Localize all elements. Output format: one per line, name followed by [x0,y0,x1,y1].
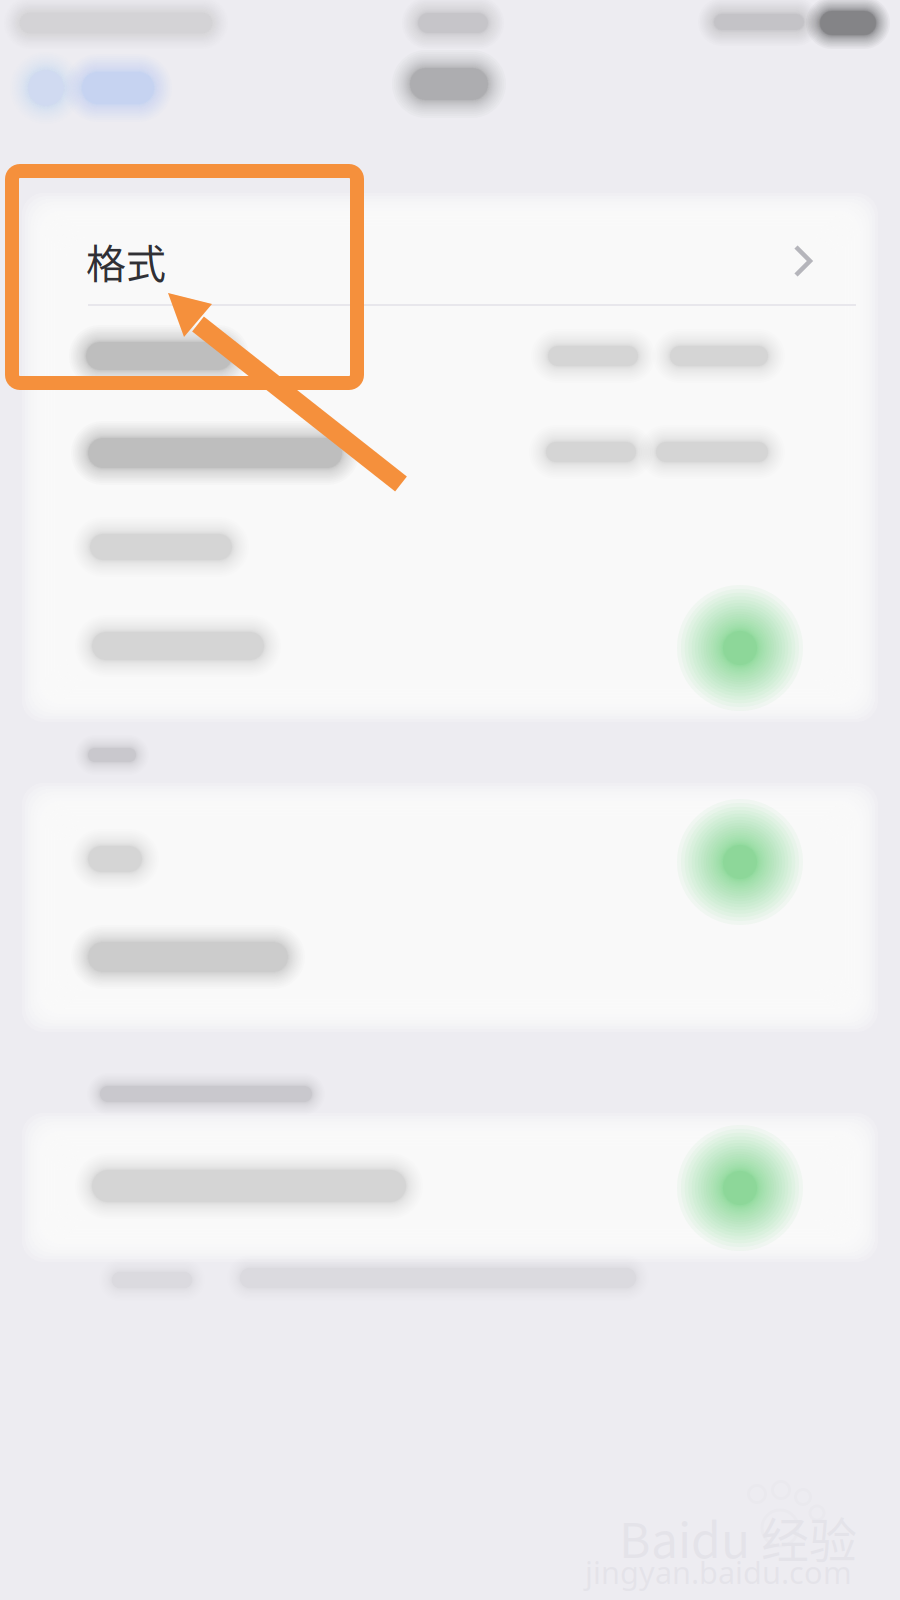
button[interactable]: 格式 [44,216,856,306]
staticText: jingyan.baidu.com [585,1551,852,1593]
staticText: 格式 [86,232,166,290]
button[interactable]: Back [0,0,900,1600]
staticText: Baidu 经验 [619,1502,857,1572]
